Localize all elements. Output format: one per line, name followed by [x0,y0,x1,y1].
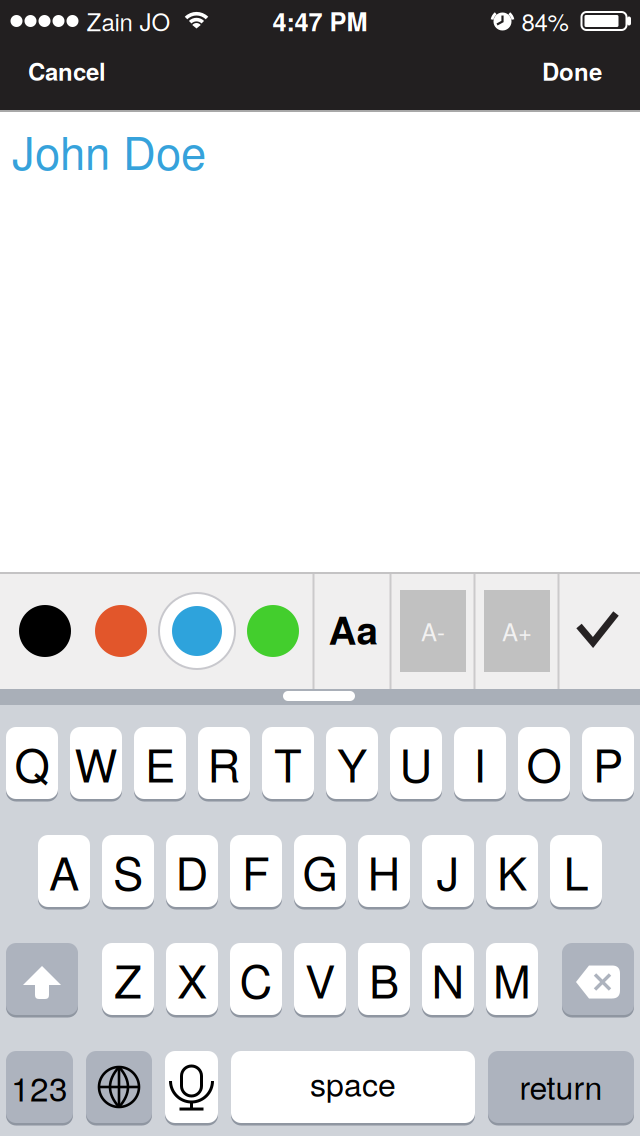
button[interactable]: Cancel [28,54,106,88]
staticText: Zain JO [86,4,170,38]
button[interactable]: space [231,1051,475,1123]
staticText: I [473,730,486,795]
staticText: O [526,730,561,795]
button[interactable]: Dictate [165,1051,218,1123]
staticText: Y [337,730,367,795]
button[interactable]: I [454,727,506,799]
button[interactable]: D [166,835,218,907]
button[interactable]: Z [102,943,154,1015]
button[interactable]: J [422,835,474,907]
button[interactable]: Decrease text size [400,590,466,672]
staticText: 123 [11,1063,68,1111]
button[interactable]: A [38,835,90,907]
button[interactable]: R [198,727,250,799]
button[interactable]: Aa [328,601,377,657]
staticText: L [563,838,588,903]
staticText: R [207,730,240,795]
staticText: C [239,946,272,1011]
staticText: P [593,730,623,795]
button[interactable]: Blue text colour (selected) [159,593,235,669]
button[interactable]: Next keyboard [86,1051,152,1123]
staticText: Q [14,730,49,795]
staticText: T [274,730,302,795]
staticText: X [177,946,207,1011]
button[interactable]: 123 [6,1051,73,1123]
button[interactable]: X [166,943,218,1015]
staticText: S [113,838,143,903]
button[interactable]: O [518,727,570,799]
button[interactable]: S [102,835,154,907]
button[interactable]: Done [542,54,602,88]
button[interactable]: U [390,727,442,799]
staticText: A+ [502,614,532,648]
button[interactable]: G [294,835,346,907]
button[interactable]: Green text colour [247,605,299,657]
staticText: space [310,1060,396,1106]
staticText: F [242,838,270,903]
button[interactable]: P [582,727,634,799]
staticText: V [305,946,335,1011]
staticText: Aa [328,601,377,657]
staticText: J [436,838,459,903]
staticText: A [49,838,79,903]
button[interactable]: E [134,727,186,799]
button[interactable]: T [262,727,314,799]
staticText: G [302,838,337,903]
button[interactable]: L [550,835,602,907]
staticText: K [497,838,527,903]
button[interactable]: Increase text size [484,590,550,672]
staticText: U [399,730,432,795]
button[interactable]: Shift [6,943,78,1015]
button[interactable]: Done formatting [577,610,621,650]
button[interactable]: V [294,943,346,1015]
button[interactable]: H [358,835,410,907]
staticText: 84% [521,4,568,38]
staticText: M [493,946,531,1011]
staticText: return [519,1063,602,1109]
button[interactable]: Orange text colour [95,605,147,657]
button[interactable]: Y [326,727,378,799]
staticText: D [175,838,208,903]
staticText: H [367,838,400,903]
staticText: John Doe [12,118,206,183]
staticText: E [145,730,175,795]
staticText: 4:47 PM [272,3,367,39]
button[interactable]: Delete [562,943,634,1015]
button[interactable]: C [230,943,282,1015]
staticText: Cancel [28,54,106,88]
staticText: Done [542,54,602,88]
staticText: N [431,946,464,1011]
staticText: B [369,946,399,1011]
staticText: Z [114,946,142,1011]
button[interactable]: B [358,943,410,1015]
staticText: A- [421,614,445,648]
button[interactable]: M [486,943,538,1015]
staticText: W [74,730,117,795]
button[interactable]: W [70,727,122,799]
button[interactable]: N [422,943,474,1015]
button[interactable]: Q [6,727,58,799]
button[interactable]: K [486,835,538,907]
button[interactable]: F [230,835,282,907]
button[interactable]: Black text colour [19,605,71,657]
button[interactable]: return [488,1051,634,1123]
